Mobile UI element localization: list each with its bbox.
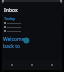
button[interactable] — [2, 25, 62, 29]
staticText: Today — [4, 16, 16, 21]
button[interactable]: Tab — [22, 60, 42, 70]
button[interactable] — [2, 21, 62, 25]
button[interactable]: Tab — [2, 60, 22, 70]
button[interactable]: Tab — [42, 60, 62, 70]
button[interactable] — [2, 29, 62, 33]
staticText: back to — [3, 43, 21, 50]
staticText: Inbox — [4, 7, 18, 14]
staticText: Welcome — [3, 36, 25, 43]
